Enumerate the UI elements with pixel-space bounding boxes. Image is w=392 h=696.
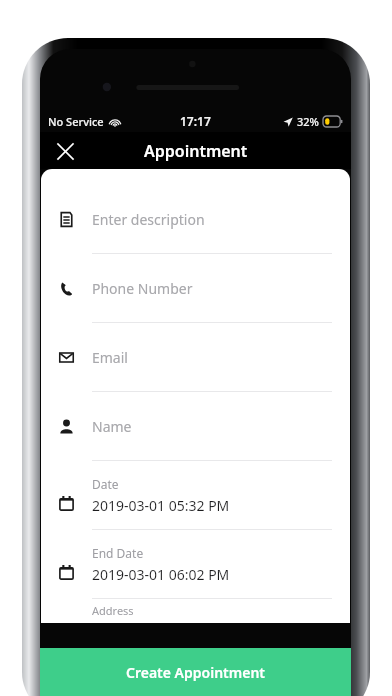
staticText: Email [92, 348, 128, 367]
staticText: Name [92, 417, 132, 436]
button[interactable]: Enter description [41, 185, 350, 253]
staticText: Create Appointment [126, 663, 266, 682]
staticText: No Service [48, 114, 104, 129]
staticText: Date [92, 476, 119, 492]
staticText: 17:17 [180, 113, 211, 129]
staticText: Phone Number [92, 279, 193, 298]
staticText: 2019-03-01 06:02 PM [92, 565, 230, 584]
staticText: Address [92, 603, 134, 618]
button[interactable]: Close [48, 134, 82, 168]
staticText: Appointment [144, 140, 248, 162]
button[interactable]: Address [41, 599, 350, 623]
button[interactable]: Date [41, 461, 350, 529]
button[interactable]: Email [41, 323, 350, 391]
button[interactable]: Name [41, 392, 350, 460]
button[interactable]: Phone Number [41, 254, 350, 322]
staticText: 32% [297, 114, 319, 129]
staticText: Enter description [92, 210, 205, 229]
button[interactable]: End Date [41, 530, 350, 598]
staticText: End Date [92, 545, 144, 561]
staticText: 2019-03-01 05:32 PM [92, 496, 230, 515]
button[interactable]: Create Appointment [40, 648, 351, 696]
